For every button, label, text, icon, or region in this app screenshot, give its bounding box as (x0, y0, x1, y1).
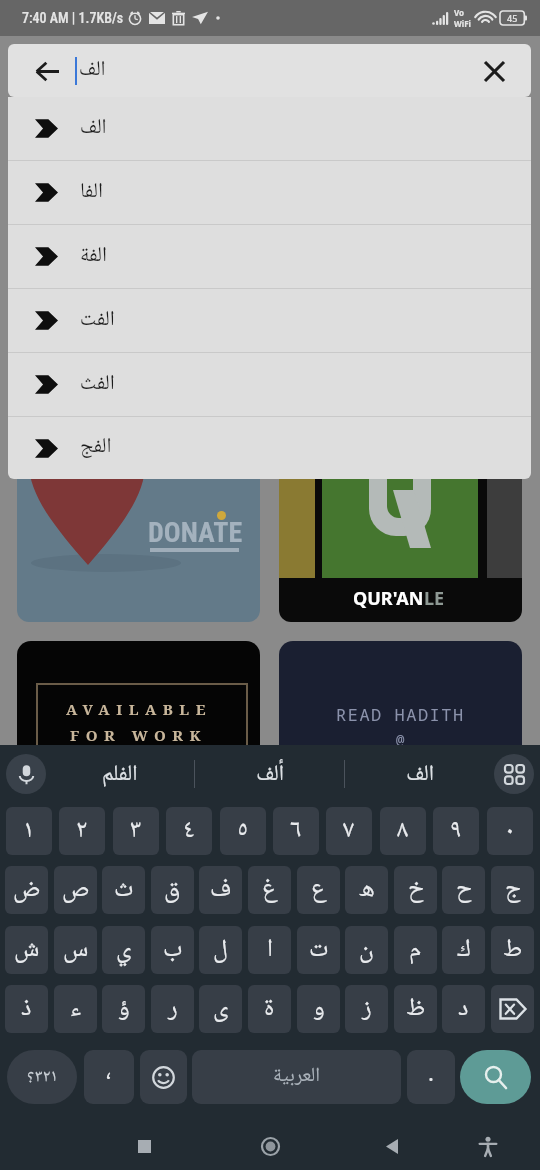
button[interactable]: ن (345, 926, 388, 974)
button[interactable]: Back (8, 44, 531, 97)
button[interactable]: ظ (394, 985, 437, 1033)
button[interactable]: Emoji (140, 1050, 187, 1104)
button[interactable]: الف (8, 97, 531, 160)
button[interactable]: ء (54, 985, 97, 1033)
button[interactable]: ١ (6, 807, 52, 855)
button[interactable]: ذ (5, 985, 48, 1033)
button[interactable]: ٦ (273, 807, 319, 855)
button[interactable]: ج (491, 866, 534, 914)
staticText: و (313, 988, 325, 1031)
button[interactable]: QUR'AN (279, 420, 522, 622)
button[interactable]: Accessibility (464, 1122, 512, 1170)
button[interactable]: . (407, 1050, 455, 1104)
staticText: م (409, 929, 422, 972)
button[interactable]: الفة (8, 225, 531, 288)
staticText: ظ (406, 988, 426, 1031)
staticText: ش (14, 929, 40, 972)
staticText: ة (264, 988, 275, 1031)
button[interactable]: Voice input (6, 754, 46, 794)
staticText: الفث (80, 367, 115, 403)
button[interactable]: ح (442, 866, 485, 914)
staticText: غ (262, 869, 278, 912)
button[interactable]: READ HADITH (279, 641, 522, 791)
button[interactable]: ك (442, 926, 485, 974)
button[interactable]: Search (460, 1050, 531, 1104)
button[interactable]: ط (491, 926, 534, 974)
staticText: ن (359, 929, 374, 972)
button[interactable]: ألف (195, 745, 344, 803)
staticText: الفا (80, 175, 103, 211)
button[interactable]: ف (199, 866, 242, 914)
button[interactable]: ص (54, 866, 97, 914)
button[interactable]: ٢ (59, 807, 105, 855)
button[interactable]: د (442, 985, 485, 1033)
button[interactable]: الفج (8, 417, 531, 479)
button[interactable]: ض (5, 866, 48, 914)
staticText: ع (311, 869, 327, 912)
staticText: Vo (454, 7, 465, 18)
button[interactable]: ر (151, 985, 194, 1033)
button[interactable]: Clear search (477, 54, 511, 88)
staticText: ألف (256, 756, 284, 793)
button[interactable]: ق (151, 866, 194, 914)
button[interactable]: Home (246, 1122, 294, 1170)
button[interactable]: الف (345, 745, 494, 803)
button[interactable]: ٣ (113, 807, 159, 855)
button[interactable]: الفت (8, 289, 531, 352)
button[interactable]: ى (199, 985, 242, 1033)
staticText: ل (213, 929, 228, 972)
button[interactable]: ، (84, 1050, 134, 1104)
button[interactable]: ت (297, 926, 340, 974)
staticText: العربية (273, 1060, 321, 1094)
button[interactable]: ٨ (380, 807, 426, 855)
button[interactable]: غ (248, 866, 291, 914)
button[interactable]: ٥ (220, 807, 266, 855)
button[interactable]: Keyboard settings (494, 754, 534, 794)
button[interactable]: الفلم (46, 745, 194, 803)
button[interactable]: ة (248, 985, 291, 1033)
button[interactable]: م (394, 926, 437, 974)
button[interactable]: ي (102, 926, 145, 974)
button[interactable]: خ (394, 866, 437, 914)
button[interactable]: DONATE (17, 420, 260, 622)
button[interactable]: ٠ (487, 807, 533, 855)
staticText: ؟ (27, 1063, 35, 1092)
button[interactable]: ش (5, 926, 48, 974)
staticText: @ (396, 730, 405, 749)
staticText: ك (457, 929, 471, 972)
button[interactable]: ع (297, 866, 340, 914)
button[interactable]: ؤ (102, 985, 145, 1033)
button[interactable]: ه (345, 866, 388, 914)
staticText: ه (359, 869, 375, 912)
button[interactable]: ث (102, 866, 145, 914)
button[interactable]: Recents (120, 1122, 168, 1170)
button[interactable]: العربية (192, 1050, 401, 1104)
button[interactable]: Back (368, 1122, 416, 1170)
staticText: ر (168, 988, 178, 1031)
button[interactable]: ٩ (433, 807, 479, 855)
button[interactable]: AVAILABLE (17, 641, 260, 791)
staticText: ٢ (76, 810, 88, 853)
button[interactable] (491, 985, 534, 1033)
staticText: ح (456, 869, 472, 912)
button[interactable]: الفث (8, 353, 531, 416)
button[interactable]: ٤ (166, 807, 212, 855)
staticText: ف (210, 869, 232, 912)
staticText: 45 (507, 12, 518, 24)
button[interactable]: و (297, 985, 340, 1033)
staticText: ٥ (237, 810, 249, 853)
button[interactable]: ؟ (7, 1050, 77, 1104)
button[interactable]: س (54, 926, 97, 974)
staticText: ٤ (183, 810, 195, 853)
button[interactable]: ل (199, 926, 242, 974)
button[interactable]: ا (248, 926, 291, 974)
staticText: ب (163, 929, 183, 972)
button[interactable]: الفا (8, 161, 531, 224)
button[interactable]: ب (151, 926, 194, 974)
staticText: ؤ (118, 988, 130, 1031)
button[interactable]: ز (345, 985, 388, 1033)
staticText: ء (70, 988, 81, 1031)
button[interactable]: ٧ (326, 807, 372, 855)
button[interactable]: Back (30, 54, 64, 88)
staticText: الفت (80, 303, 115, 339)
